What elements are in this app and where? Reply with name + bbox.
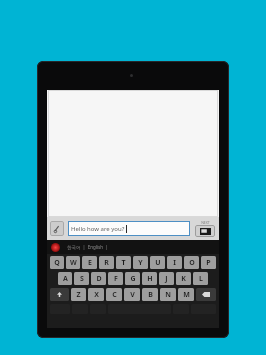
button[interactable]: M <box>178 288 194 301</box>
staticText: U <box>155 258 161 268</box>
staticText: Q <box>54 258 60 268</box>
button[interactable]: F <box>108 272 123 285</box>
button[interactable]: W <box>66 256 80 269</box>
button[interactable]: P <box>201 256 216 269</box>
staticText: F <box>114 274 118 284</box>
button[interactable]: T <box>116 256 131 269</box>
button[interactable]: Attach <box>50 221 64 236</box>
button[interactable]: Y <box>133 256 148 269</box>
staticText: Z <box>76 290 81 300</box>
staticText: M <box>183 290 190 300</box>
staticText: K <box>181 274 186 284</box>
button[interactable]: Q <box>50 256 64 269</box>
button[interactable]: K <box>176 272 191 285</box>
button[interactable]: H <box>142 272 157 285</box>
staticText: R <box>104 258 109 268</box>
staticText: Hello how are you? <box>71 225 125 233</box>
staticText: NEXT <box>201 220 210 225</box>
staticText: X <box>94 290 99 300</box>
button[interactable]: X <box>88 288 104 301</box>
staticText: I <box>173 258 176 268</box>
button[interactable]: V <box>124 288 140 301</box>
button[interactable]: Voice input <box>51 243 60 252</box>
staticText: J <box>165 274 168 284</box>
button[interactable]: U <box>150 256 165 269</box>
button[interactable]: C <box>106 288 122 301</box>
staticText: H <box>147 274 153 284</box>
button[interactable]: Z <box>71 288 86 301</box>
button[interactable]: N <box>160 288 176 301</box>
button[interactable]: D <box>91 272 106 285</box>
button[interactable]: A <box>58 272 72 285</box>
button[interactable]: Hello how are you? <box>68 221 190 236</box>
staticText: A <box>63 274 68 284</box>
staticText: T <box>121 258 126 268</box>
button[interactable]: Backspace <box>196 288 216 301</box>
staticText: B <box>148 290 153 300</box>
button[interactable]: S <box>74 272 89 285</box>
staticText: V <box>130 290 135 300</box>
button[interactable]: Done <box>194 220 216 237</box>
button[interactable]: B <box>142 288 158 301</box>
button[interactable]: R <box>99 256 114 269</box>
staticText: C <box>112 290 117 300</box>
button[interactable]: G <box>125 272 140 285</box>
button[interactable]: J <box>159 272 174 285</box>
staticText: L <box>199 274 203 284</box>
staticText: G <box>130 274 136 284</box>
staticText: O <box>189 258 195 268</box>
staticText: E <box>88 258 92 268</box>
staticText: S <box>80 274 84 284</box>
staticText: Y <box>138 258 143 268</box>
staticText: D <box>96 274 102 284</box>
staticText: P <box>206 258 211 268</box>
button[interactable]: L <box>193 272 208 285</box>
staticText: 한국어 | English | <box>67 244 108 250</box>
button[interactable]: Shift <box>50 288 69 301</box>
button[interactable]: I <box>167 256 182 269</box>
staticText: W <box>70 258 77 268</box>
button[interactable]: E <box>82 256 97 269</box>
button[interactable]: O <box>184 256 199 269</box>
staticText: N <box>165 290 171 300</box>
